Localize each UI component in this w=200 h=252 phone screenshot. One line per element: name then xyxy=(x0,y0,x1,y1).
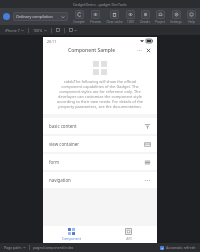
button[interactable]: Component xyxy=(43,226,100,243)
button[interactable]: Automatic refresh toggle xyxy=(160,246,164,250)
staticText: Details xyxy=(140,20,150,24)
staticText: view container xyxy=(49,141,80,147)
staticText: navigation xyxy=(49,177,71,183)
staticText: Component Sample xyxy=(68,47,116,54)
staticText: basic content xyxy=(49,123,77,129)
staticText: Component xyxy=(62,236,81,241)
button[interactable]: Close xyxy=(145,47,152,54)
staticText: Compile xyxy=(73,20,85,24)
staticText: Clear cache xyxy=(106,20,123,24)
button[interactable]: More xyxy=(136,47,143,54)
staticText: Automatic refresh xyxy=(166,245,196,250)
button[interactable]: view container xyxy=(43,136,157,152)
staticText: 1000 xyxy=(127,20,134,24)
staticText: iPhone 7 xyxy=(5,28,20,33)
staticText: Preview xyxy=(90,20,101,24)
staticText: form xyxy=(49,159,60,165)
staticText: sidebThe following will show the officia… xyxy=(53,79,147,109)
button[interactable]: Help xyxy=(186,10,197,24)
staticText: 100% xyxy=(33,28,43,33)
button[interactable]: Page path: xyxy=(4,245,26,250)
button[interactable] xyxy=(68,28,78,32)
button[interactable]: Account xyxy=(3,13,10,20)
staticText: 20:11 xyxy=(47,39,57,44)
staticText: Settings xyxy=(170,20,182,24)
button[interactable]: Details xyxy=(139,10,151,24)
staticText: Page path: xyxy=(4,245,22,250)
button[interactable]: basic content xyxy=(43,118,157,134)
staticText: API xyxy=(126,236,132,241)
button[interactable]: Ordinary compilation xyxy=(13,12,68,21)
button[interactable]: iPhone 7 xyxy=(4,28,25,33)
button[interactable]: Clear cache xyxy=(105,10,124,24)
button[interactable]: API xyxy=(100,226,157,243)
staticText: pages/component/index xyxy=(33,245,74,250)
staticText: Ordinary compilation xyxy=(16,14,61,19)
button[interactable]: Project xyxy=(154,10,166,24)
staticText: Project xyxy=(155,20,165,24)
button[interactable]: Rotate xyxy=(55,27,61,33)
button[interactable]: Settings xyxy=(169,10,183,24)
button[interactable]: 1000 xyxy=(125,10,136,24)
button[interactable]: 100% xyxy=(32,28,48,33)
button[interactable]: form xyxy=(43,154,157,170)
button[interactable]: navigation xyxy=(43,172,157,188)
staticText: GadgetDemo - gadget DevTools xyxy=(73,2,127,7)
button[interactable]: Compile xyxy=(72,10,86,24)
button[interactable]: Preview xyxy=(89,10,102,24)
staticText: Help xyxy=(188,20,195,24)
